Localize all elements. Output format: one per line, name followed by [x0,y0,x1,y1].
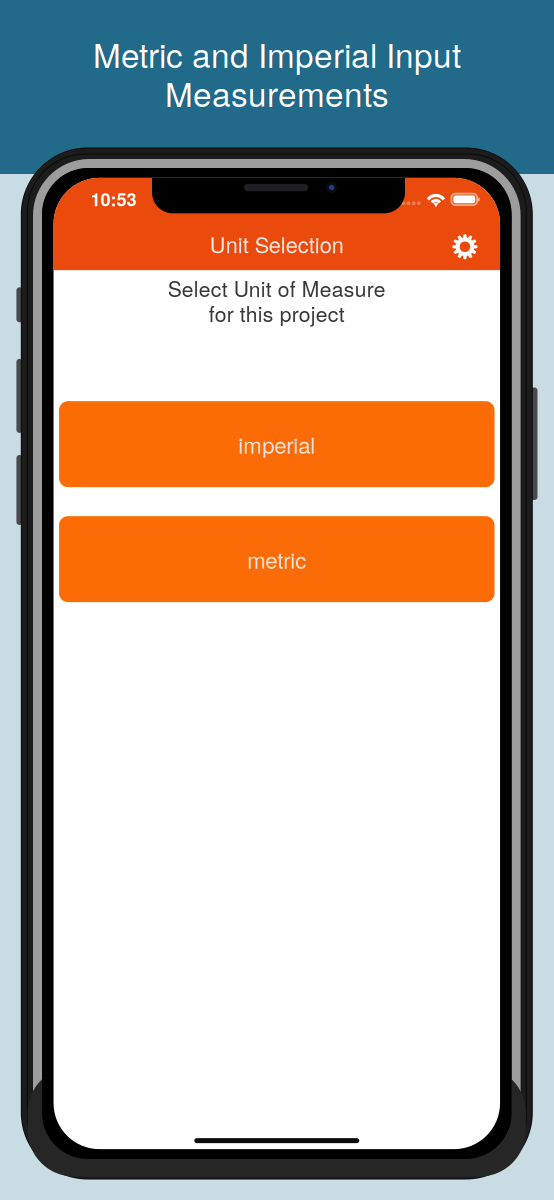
button[interactable]: imperial [59,401,495,487]
staticText: Metric and Imperial Input [93,30,461,77]
staticText: Unit Selection [210,228,344,259]
staticText: Measurements [165,69,389,116]
button[interactable]: Settings [442,226,488,268]
staticText: Select Unit of Measure [168,273,386,303]
staticText: imperial [238,428,315,460]
staticText: metric [247,543,306,575]
button[interactable]: metric [59,516,495,602]
staticText: for this project [209,298,345,328]
staticText: 10:53 [91,186,137,212]
